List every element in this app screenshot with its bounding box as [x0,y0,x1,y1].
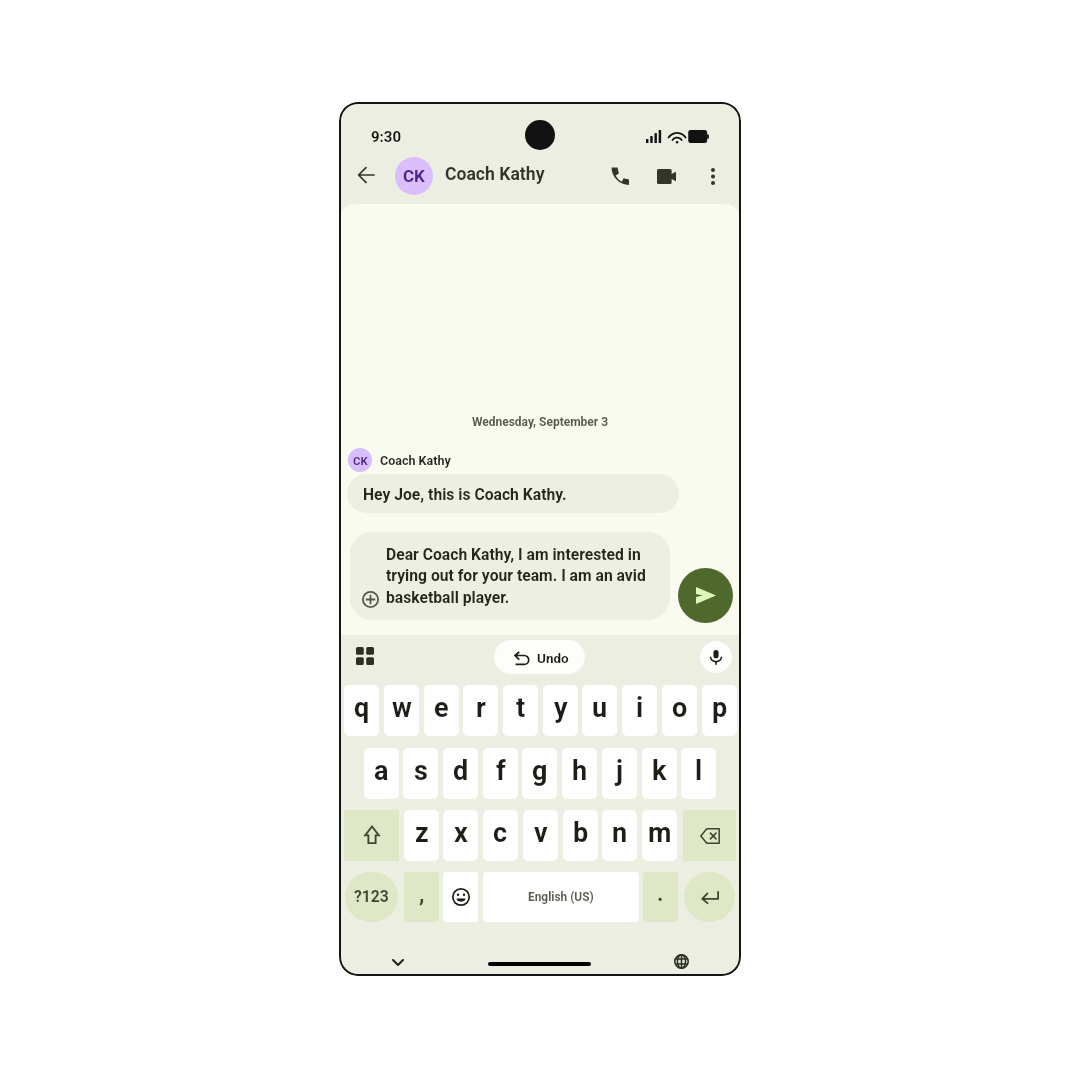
button[interactable]: i [622,685,657,736]
button[interactable]: Add attachment [362,591,379,608]
button[interactable]: Hide keyboard [384,948,412,976]
staticText: q [354,692,370,724]
button[interactable]: l [681,748,716,799]
button[interactable]: n [602,810,637,861]
button[interactable]: k [642,748,677,799]
staticText: x [454,817,468,849]
button[interactable]: g [522,748,557,799]
button[interactable]: p [702,685,737,736]
button[interactable]: f [483,748,518,799]
button[interactable]: Call [600,156,640,196]
button[interactable]: d [443,748,478,799]
button[interactable]: m [642,810,677,861]
staticText: o [672,692,688,724]
button[interactable]: English (US) [483,872,639,922]
staticText: z [415,817,429,849]
button[interactable]: Change language [667,947,695,975]
button[interactable]: q [344,685,379,736]
staticText: k [652,755,667,787]
button[interactable]: Hey Joe, this is Coach Kathy. [347,474,679,513]
button[interactable]: u [582,685,617,736]
button[interactable]: Emoji [443,872,478,922]
staticText: b [573,817,589,849]
button[interactable]: b [563,810,598,861]
button[interactable]: Shift [344,810,399,861]
button[interactable]: c [483,810,518,861]
staticText: d [453,755,469,787]
button[interactable]: t [503,685,538,736]
staticText: Wednesday, September 3 [339,415,741,429]
button[interactable]: z [404,810,439,861]
button[interactable]: x [443,810,478,861]
staticText: i [636,692,644,724]
button[interactable]: y [543,685,578,736]
staticText: t [516,692,526,724]
button[interactable]: Enter [684,872,735,922]
button[interactable]: Send [678,568,733,623]
staticText: n [612,817,628,849]
staticText: u [592,692,608,724]
button[interactable]: More options [693,156,733,196]
staticText: j [616,755,624,787]
staticText: ?123 [354,887,389,905]
button[interactable]: ?123 [345,872,398,922]
button[interactable]: r [463,685,498,736]
staticText: e [434,692,449,724]
staticText: CK [403,166,425,186]
button[interactable]: Voice input [700,641,732,673]
button[interactable]: e [424,685,459,736]
staticText: a [374,755,389,787]
staticText: English (US) [528,890,594,904]
staticText: r [476,692,486,724]
staticText: p [712,692,728,724]
staticText: . [657,881,664,907]
button[interactable]: Back [346,155,386,195]
staticText: l [695,755,703,787]
staticText: Coach Kathy [380,453,451,468]
button[interactable]: w [384,685,419,736]
button[interactable]: j [602,748,637,799]
button[interactable]: Backspace [683,810,736,861]
button[interactable]: . [643,872,678,922]
staticText: w [392,692,412,724]
staticText: 9:30 [371,128,402,146]
button[interactable]: v [523,810,558,861]
staticText: m [648,817,672,849]
staticText: g [532,755,548,787]
staticText: Hey Joe, this is Coach Kathy. [363,485,567,503]
button[interactable]: Undo [494,640,585,674]
staticText: h [572,755,588,787]
staticText: s [414,755,428,787]
button[interactable]: CK [395,157,433,195]
button[interactable]: Video call [646,156,686,196]
button[interactable]: Keyboard modes [351,642,379,670]
button[interactable]: o [662,685,697,736]
button[interactable]: Dear Coach Kathy, I am interested in try… [350,532,670,620]
button[interactable]: a [364,748,399,799]
button[interactable]: s [403,748,438,799]
staticText: CK [353,454,368,467]
button[interactable]: h [562,748,597,799]
staticText: c [493,817,508,849]
staticText: Undo [537,650,569,666]
staticText: Dear Coach Kathy, I am interested in try… [386,545,658,607]
staticText: Coach Kathy [445,164,545,185]
staticText: , [419,882,425,908]
button[interactable]: , [404,872,439,922]
staticText: v [534,817,548,849]
staticText: y [554,692,568,724]
staticText: f [496,755,506,787]
